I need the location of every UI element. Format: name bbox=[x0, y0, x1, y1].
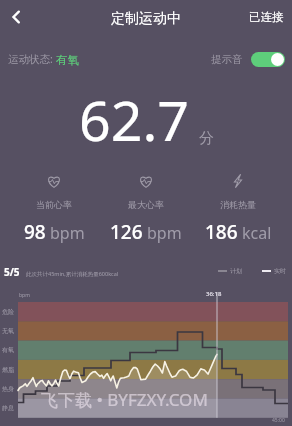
button[interactable]: Sound toggle bbox=[251, 52, 285, 67]
staticText: 36:18 bbox=[206, 290, 222, 298]
staticText: bpm bbox=[147, 222, 182, 244]
staticText: 无氧 bbox=[2, 327, 14, 335]
staticText: 此次共计45min,累计消耗热量600kcal bbox=[26, 270, 119, 278]
staticText: 最大心率 bbox=[128, 199, 164, 210]
staticText: 126 bbox=[110, 219, 143, 245]
staticText: 定制运动中 bbox=[111, 10, 181, 28]
staticText: 提示音 bbox=[211, 53, 243, 66]
button[interactable]: 实时 bbox=[262, 267, 286, 275]
button[interactable]: 已连接 bbox=[249, 10, 284, 24]
staticText: bpm bbox=[50, 222, 85, 244]
staticText: 静息 bbox=[2, 404, 14, 412]
staticText: 计划 bbox=[230, 267, 242, 275]
staticText: bpm bbox=[19, 292, 30, 299]
staticText: 热身 bbox=[2, 385, 14, 393]
staticText: 45:00 bbox=[272, 417, 285, 424]
button[interactable]: 最大心率 bbox=[100, 173, 192, 245]
button[interactable]: 消耗热量 bbox=[192, 173, 284, 245]
staticText: 危险 bbox=[2, 308, 14, 316]
staticText: 当前心率 bbox=[36, 199, 72, 210]
staticText: 有氧 bbox=[56, 53, 79, 67]
staticText: 186 bbox=[205, 219, 238, 245]
staticText: 62.7 bbox=[79, 82, 190, 158]
staticText: 燃脂 bbox=[2, 366, 14, 374]
staticText: 已连接 bbox=[249, 10, 284, 24]
button[interactable]: 计划 bbox=[218, 267, 242, 275]
staticText: 98 bbox=[24, 219, 46, 245]
staticText: 实时 bbox=[274, 267, 286, 275]
button[interactable]: 当前心率 bbox=[8, 173, 100, 245]
staticText: 飞下载 • BYFZXY.COM bbox=[41, 388, 208, 411]
button[interactable]: Back bbox=[2, 3, 30, 31]
staticText: 有氧 bbox=[2, 346, 14, 354]
staticText: 分 bbox=[199, 129, 214, 148]
staticText: 运动状态: bbox=[8, 52, 53, 66]
staticText: 消耗热量 bbox=[220, 199, 256, 210]
staticText: kcal bbox=[242, 222, 272, 244]
staticText: 5/5 bbox=[4, 265, 20, 279]
